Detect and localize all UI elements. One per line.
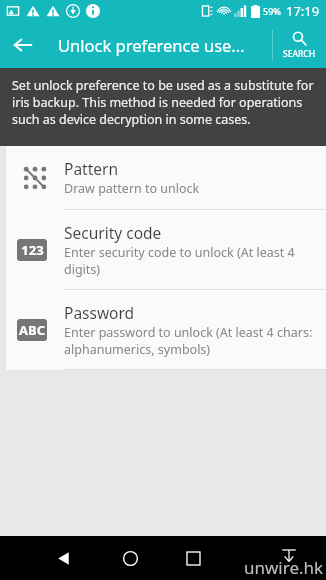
button[interactable]: Capture screenshot (272, 538, 306, 572)
staticText: Set unlock preference to be used as a su… (12, 77, 314, 128)
staticText: unwire.hk (244, 556, 324, 579)
staticText: Pattern (64, 158, 118, 179)
button[interactable]: Recents (173, 538, 213, 578)
button[interactable]: Back (43, 538, 83, 578)
staticText: Password (64, 302, 135, 323)
staticText: SEARCH (283, 48, 316, 60)
button[interactable]: Home (110, 538, 150, 578)
button[interactable]: Back (0, 22, 46, 68)
button[interactable]: Pattern (6, 146, 326, 210)
button[interactable]: ABC (6, 290, 326, 370)
staticText: Enter password to unlock (At least 4 cha… (64, 324, 316, 357)
staticText: Draw pattern to unlock (64, 180, 200, 197)
staticText: 59% (263, 5, 281, 17)
staticText: Unlock preference use... (58, 34, 245, 56)
staticText: ABC (19, 321, 45, 339)
staticText: Security code (64, 222, 162, 243)
staticText: 123 (21, 241, 44, 259)
button[interactable]: 123 (6, 210, 326, 290)
button[interactable]: SEARCH (272, 22, 326, 68)
staticText: Enter security code to unlock (At least … (64, 244, 316, 277)
staticText: 17:19 (286, 2, 320, 20)
